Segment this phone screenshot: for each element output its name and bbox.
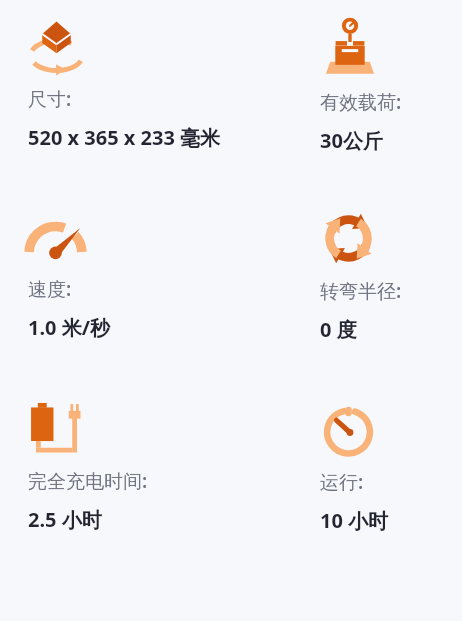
other: 有效载荷:	[320, 18, 380, 78]
other: 尺寸:	[28, 18, 85, 75]
staticText: 520 x 365 x 233 毫米	[28, 124, 221, 151]
button[interactable]: 转弯半径:	[320, 210, 462, 343]
other: 转弯半径:	[320, 210, 377, 267]
staticText: 运行:	[320, 469, 364, 495]
button[interactable]: 运行:	[320, 401, 462, 534]
other: 运行:	[320, 401, 377, 458]
staticText: 完全充电时间:	[28, 468, 148, 494]
staticText: 速度:	[28, 276, 72, 302]
staticText: 0 度	[320, 316, 357, 343]
button[interactable]: 尺寸:	[28, 18, 320, 151]
staticText: 尺寸:	[28, 86, 72, 112]
button[interactable]: 速度:	[28, 210, 320, 341]
staticText: 1.0 米/秒	[28, 314, 110, 341]
staticText: 有效载荷:	[320, 89, 402, 115]
button[interactable]: 完全充电时间:	[28, 401, 320, 533]
other: 完全充电时间:	[28, 401, 84, 457]
button[interactable]: 有效载荷:	[320, 18, 462, 154]
staticText: 10 小时	[320, 507, 389, 534]
staticText: 30公斤	[320, 127, 383, 154]
other: 速度:	[28, 210, 83, 265]
staticText: 2.5 小时	[28, 506, 102, 533]
staticText: 转弯半径:	[320, 278, 402, 304]
